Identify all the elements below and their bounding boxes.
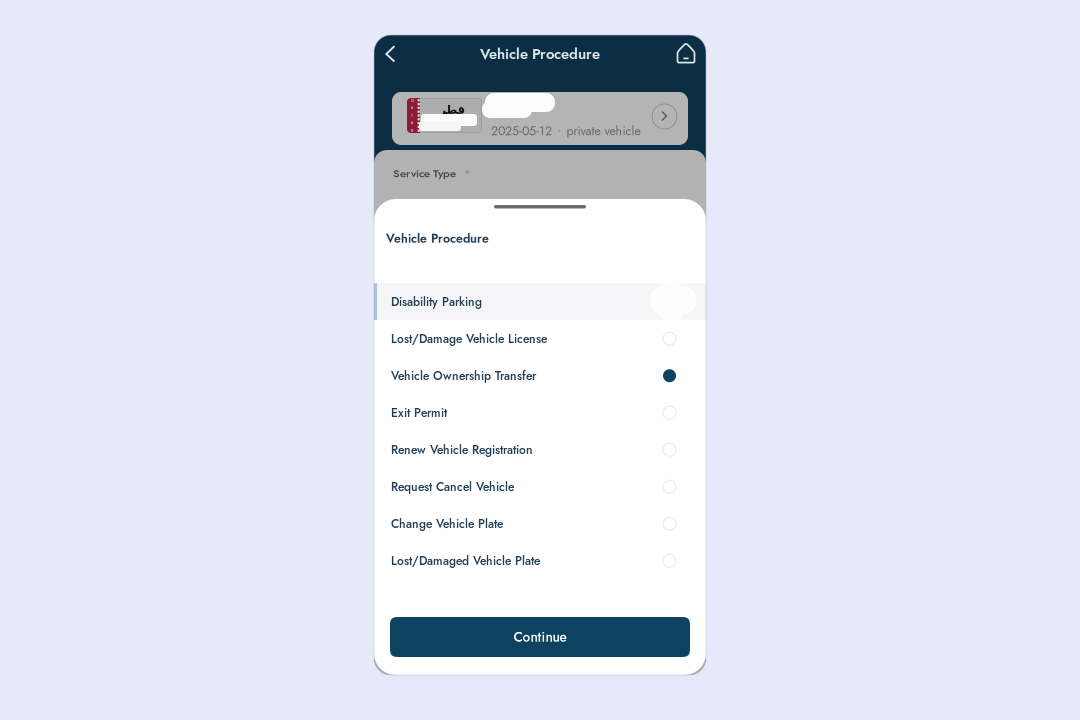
- button[interactable]: Continue: [390, 617, 690, 657]
- button[interactable]: Home: [671, 39, 701, 69]
- staticText: Service Type: [393, 165, 456, 181]
- staticText: private vehicle: [566, 122, 640, 140]
- staticText: Lost/Damaged Vehicle Plate: [391, 552, 540, 569]
- button[interactable]: Request Cancel Vehicle: [374, 468, 706, 505]
- button[interactable]: Back: [379, 39, 409, 69]
- staticText: Request Cancel Vehicle: [391, 478, 514, 495]
- staticText: Vehicle Ownership Transfer: [391, 367, 536, 384]
- staticText: Continue: [513, 627, 566, 647]
- button[interactable]: Disability Parking: [374, 283, 706, 320]
- staticText: Vehicle Procedure: [480, 43, 600, 65]
- button[interactable]: Exit Permit: [374, 394, 706, 431]
- staticText: قطر: [439, 103, 465, 116]
- staticText: *: [464, 165, 470, 181]
- button[interactable]: Lost/Damage Vehicle License: [374, 320, 706, 357]
- staticText: A: [410, 105, 413, 111]
- staticText: Q: [410, 97, 413, 103]
- button[interactable]: Selected vehicle: [392, 92, 688, 145]
- staticText: T: [411, 112, 413, 119]
- staticText: Change Vehicle Plate: [391, 515, 503, 532]
- staticText: Disability Parking: [391, 293, 482, 310]
- staticText: Exit Permit: [391, 404, 447, 421]
- staticText: R: [411, 127, 413, 134]
- staticText: Vehicle Procedure: [386, 229, 489, 247]
- button[interactable]: Renew Vehicle Registration: [374, 431, 706, 468]
- staticText: A: [410, 120, 413, 126]
- staticText: 2025-05-12: [491, 122, 552, 140]
- staticText: Renew Vehicle Registration: [391, 441, 533, 458]
- button[interactable]: Change Vehicle Plate: [374, 505, 706, 542]
- button[interactable]: Vehicle Ownership Transfer: [374, 357, 706, 394]
- staticText: Lost/Damage Vehicle License: [391, 330, 547, 347]
- button[interactable]: Lost/Damaged Vehicle Plate: [374, 542, 706, 579]
